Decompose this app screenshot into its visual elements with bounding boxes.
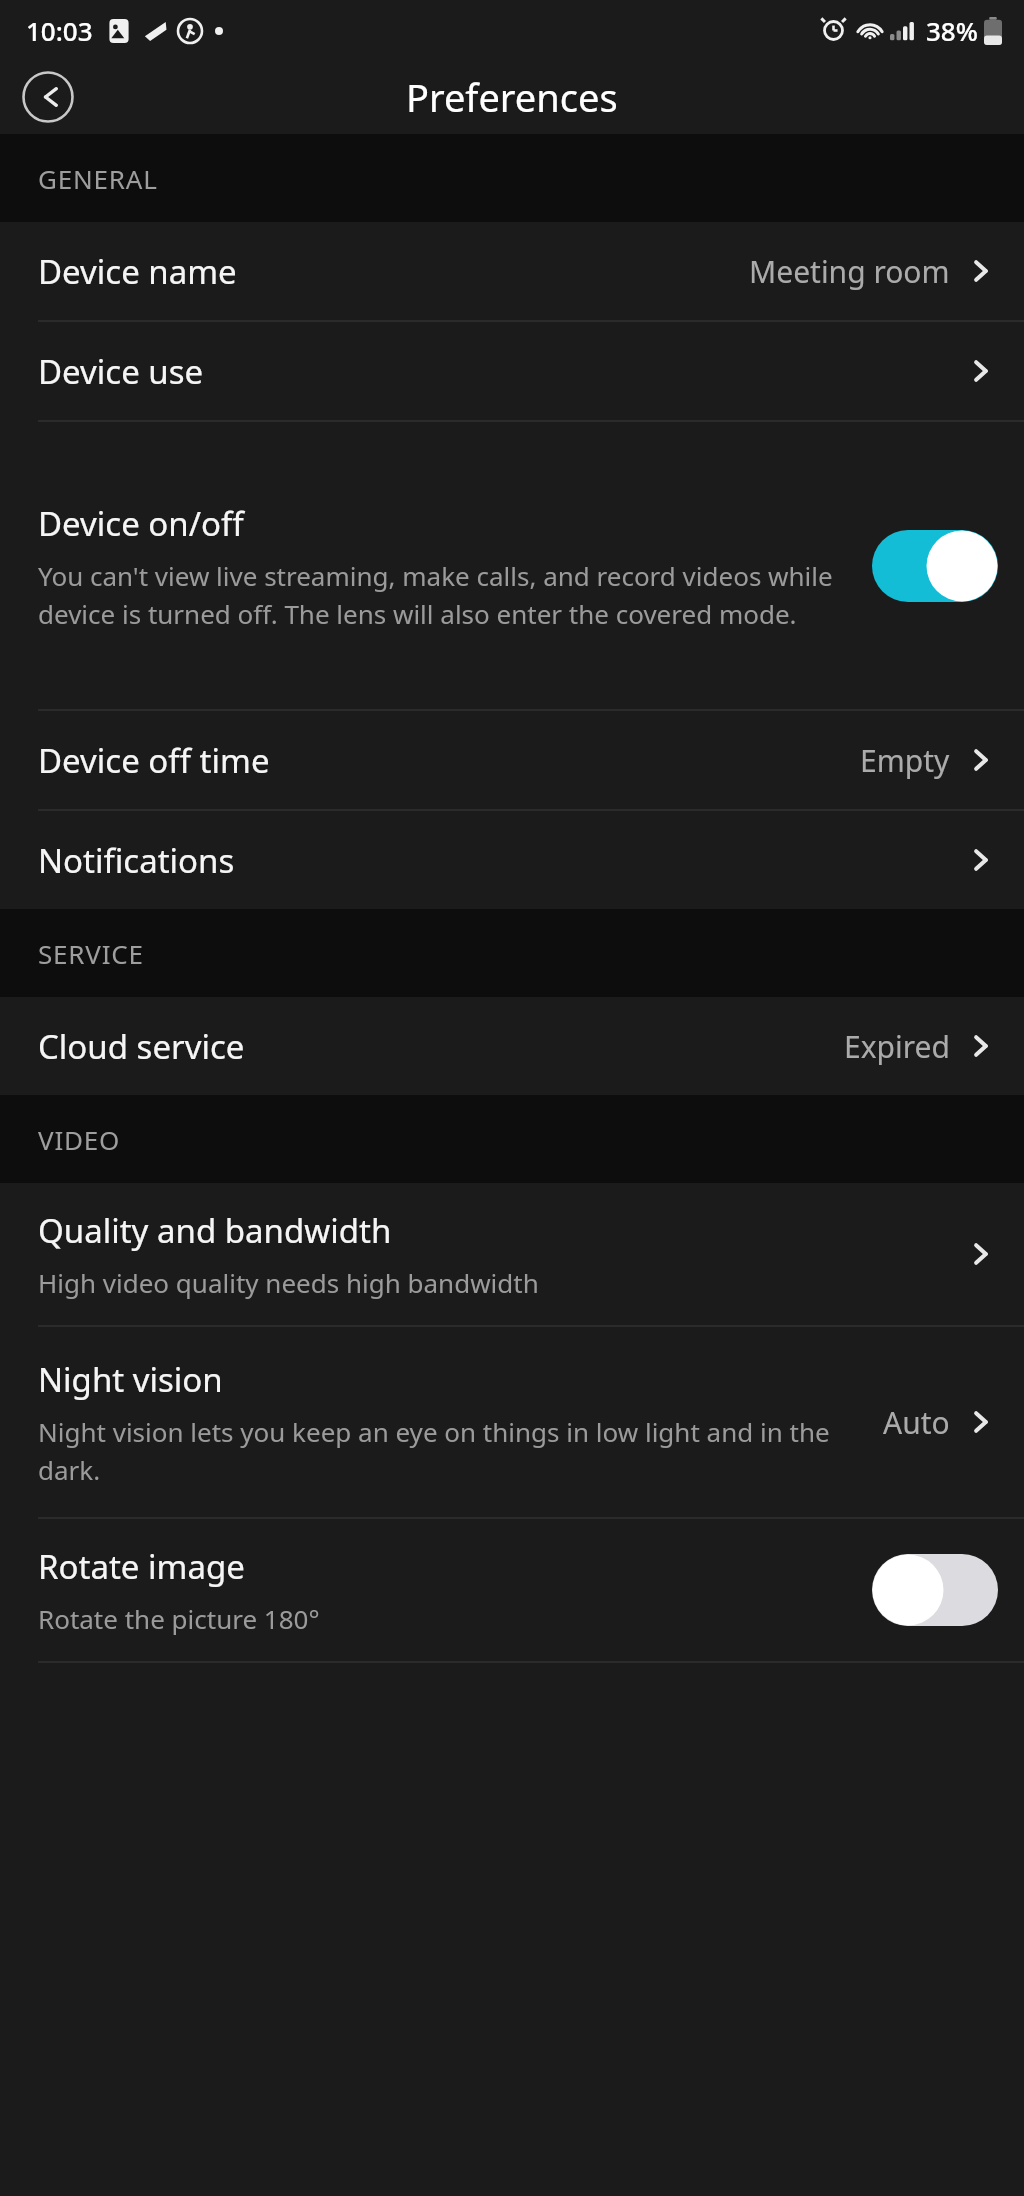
button[interactable]: Toggle off: [872, 1553, 998, 1627]
button[interactable]: Rotate image: [0, 1519, 1024, 1661]
staticText: Quality and bandwidth: [38, 1208, 392, 1253]
staticText: Expired: [844, 1026, 950, 1067]
staticText: SERVICE: [38, 936, 144, 971]
staticText: Night vision lets you keep an eye on thi…: [38, 1414, 867, 1487]
button[interactable]: Device on/off: [0, 422, 1024, 709]
button[interactable]: Notifications: [0, 811, 1024, 909]
staticText: Meeting room: [749, 251, 950, 292]
button[interactable]: Device use: [0, 322, 1024, 420]
staticText: VIDEO: [38, 1122, 121, 1157]
staticText: Empty: [860, 740, 950, 781]
staticText: 38%: [926, 13, 978, 48]
staticText: GENERAL: [38, 161, 158, 196]
staticText: 10:03: [26, 13, 93, 48]
button[interactable]: Quality and bandwidth: [0, 1183, 1024, 1325]
staticText: Auto: [883, 1402, 950, 1443]
button[interactable]: Toggle on: [872, 529, 998, 603]
staticText: Device use: [38, 349, 204, 394]
staticText: Device name: [38, 249, 237, 294]
staticText: Cloud service: [38, 1024, 245, 1069]
staticText: You can't view live streaming, make call…: [38, 558, 866, 631]
button[interactable]: Night vision: [0, 1327, 1024, 1517]
button[interactable]: Cloud service: [0, 997, 1024, 1095]
staticText: Device on/off: [38, 501, 244, 546]
staticText: Rotate image: [38, 1544, 245, 1589]
button[interactable]: Device name: [0, 222, 1024, 320]
button[interactable]: Device off time: [0, 711, 1024, 809]
staticText: Rotate the picture 180°: [38, 1601, 320, 1636]
staticText: High video quality needs high bandwidth: [38, 1265, 539, 1300]
staticText: Notifications: [38, 838, 235, 883]
staticText: Device off time: [38, 738, 270, 783]
staticText: Preferences: [406, 71, 618, 123]
staticText: Night vision: [38, 1357, 223, 1402]
button[interactable]: Back: [20, 69, 76, 125]
